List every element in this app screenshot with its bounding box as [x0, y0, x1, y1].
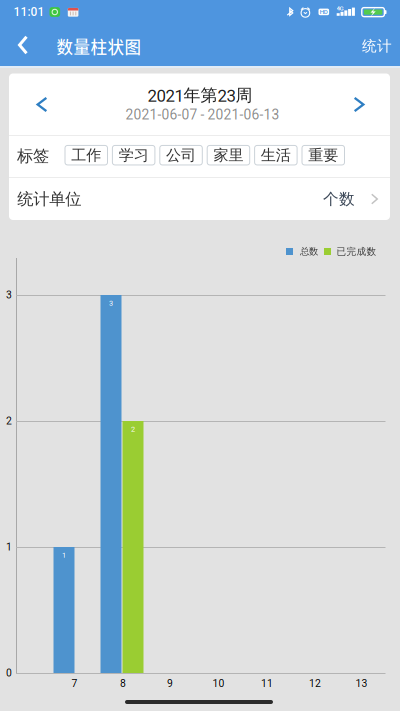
staticText: 工作 [71, 146, 101, 165]
button[interactable]: 统计 [348, 25, 400, 67]
staticText: 3 [109, 299, 113, 308]
staticText: 2021-06-07 - 2021-06-13 [125, 107, 279, 123]
staticText: 12 [309, 677, 321, 690]
staticText: 3 [6, 289, 12, 301]
button[interactable]: Next week [337, 79, 381, 129]
staticText: 8 [120, 677, 126, 690]
staticText: 公司 [166, 146, 196, 165]
staticText: 7 [72, 677, 78, 690]
staticText: 家里 [213, 146, 243, 165]
button[interactable]: Back [0, 24, 46, 66]
staticText: 11 [261, 677, 273, 690]
staticText: 0 [6, 667, 12, 679]
staticText: 标签 [17, 146, 49, 166]
staticText: 重要 [308, 146, 338, 165]
staticText: 11:01 [13, 5, 44, 19]
button[interactable]: 学习 [112, 145, 155, 165]
staticText: 9 [167, 677, 173, 690]
staticText: 13 [356, 677, 368, 690]
staticText: 统计单位 [17, 189, 81, 209]
staticText: HD [320, 8, 328, 15]
staticText: 2 [131, 425, 135, 434]
button[interactable]: 公司 [160, 145, 202, 165]
staticText: 统计 [362, 37, 392, 55]
staticText: 个数 [323, 189, 355, 209]
staticText: 4G [336, 5, 343, 12]
button[interactable]: 家里 [207, 145, 250, 165]
staticText: 生活 [261, 146, 291, 165]
button[interactable]: 重要 [302, 145, 344, 165]
staticText: 1 [62, 551, 66, 560]
button[interactable]: 生活 [255, 145, 297, 165]
staticText: 总数 [300, 246, 318, 257]
button[interactable]: 统计单位 [9, 178, 390, 220]
button[interactable]: Previous week [20, 79, 64, 129]
staticText: 数量柱状图 [56, 34, 141, 58]
staticText: 1 [6, 541, 12, 553]
button[interactable]: 工作 [65, 145, 107, 165]
staticText: 学习 [119, 146, 149, 165]
staticText: 2021年第23周 [147, 85, 252, 106]
staticText: 10 [213, 677, 225, 690]
staticText: 已完成数 [336, 245, 376, 258]
staticText: 2 [6, 415, 12, 427]
